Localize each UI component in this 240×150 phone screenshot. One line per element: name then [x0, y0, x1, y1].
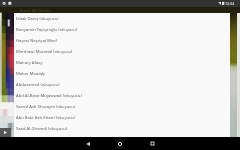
staticText: Maher Muaiqly: [16, 71, 46, 77]
button[interactable]: Mahary Afasy: [14, 57, 230, 68]
button[interactable]: Maher Muaiqly: [14, 68, 230, 79]
staticText: Minshawi Murattal (okuyucu): [16, 49, 73, 55]
button[interactable]: Play: [0, 128, 11, 137]
staticText: Ishak Danış (okuyucu): [16, 16, 59, 22]
staticText: Abu Bakr Ash-Shatri (okuyucu): [16, 115, 75, 121]
button[interactable]: Abdusamed (okuyucu): [14, 79, 230, 90]
button[interactable]: Hayrat Neşriyat Meal: [14, 35, 230, 46]
staticText: 12:34: [225, 1, 235, 6]
button[interactable]: Bünyamin Topçuoğlu (okuyucu): [14, 24, 230, 35]
staticText: Abd Al-Basit Mujawwad (okuyucu): [16, 93, 82, 99]
button[interactable]: Minshawi Murattal (okuyucu): [14, 46, 230, 57]
button[interactable]: Recent apps: [144, 137, 160, 150]
button[interactable]: Home: [112, 137, 128, 150]
button[interactable]: Saood Ash-Shuraym (okuyucu): [14, 101, 230, 112]
staticText: Suret Ali İmran: [20, 7, 51, 13]
staticText: Saood Ash-Shuraym (okuyucu): [16, 104, 76, 110]
staticText: Bünyamin Topçuoğlu (okuyucu): [16, 27, 78, 33]
staticText: Hayrat Neşriyat Meal: [16, 38, 57, 44]
button[interactable]: Abd Al-Basit Mujawwad (okuyucu): [14, 90, 230, 101]
staticText: Abdusamed (okuyucu): [16, 82, 60, 88]
button[interactable]: Abu Bakr Ash-Shatri (okuyucu): [14, 112, 230, 123]
staticText: Saad Al-Ghamdi (okuyucu): [16, 126, 68, 132]
staticText: Mahary Afasy: [16, 60, 43, 66]
button[interactable]: Saad Al-Ghamdi (okuyucu): [14, 123, 230, 134]
button[interactable]: Ishak Danış (okuyucu): [14, 13, 230, 24]
button[interactable]: Back: [80, 137, 96, 150]
